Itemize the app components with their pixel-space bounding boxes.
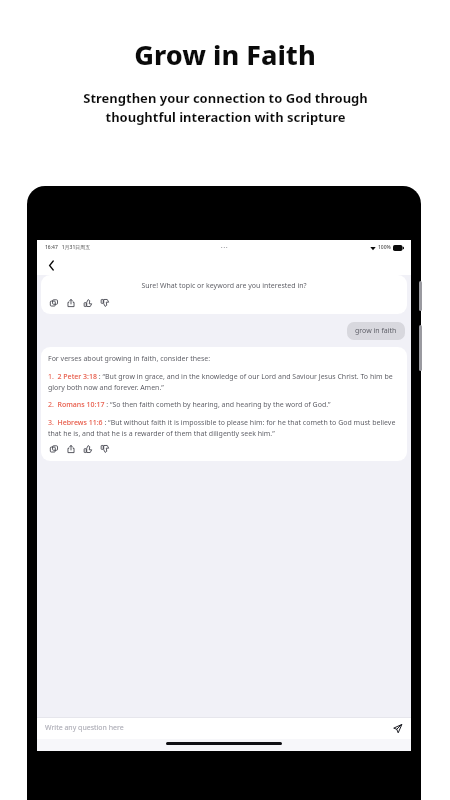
staticText: Sure! What topic or keyword are you inte… bbox=[48, 281, 400, 291]
staticText: • • • bbox=[221, 245, 228, 250]
staticText: 100% bbox=[378, 244, 391, 251]
button[interactable]: Send bbox=[391, 722, 403, 734]
button[interactable]: Write any question here bbox=[37, 717, 411, 739]
button[interactable]: Dislike bbox=[99, 443, 110, 454]
button[interactable]: Back bbox=[42, 256, 60, 274]
staticText: For verses about growing in faith, consi… bbox=[48, 354, 211, 364]
staticText: 16:47 1月31日周五 bbox=[45, 244, 91, 251]
button[interactable]: Copy bbox=[48, 297, 59, 308]
staticText: 1. 2 Peter 3:18 : “But grow in grace, an… bbox=[48, 372, 400, 392]
staticText: Grow in Faith bbox=[134, 36, 316, 73]
button[interactable]: For verses about growing in faith, consi… bbox=[41, 347, 407, 461]
staticText: 3. Hebrews 11:6 : “But without faith it … bbox=[48, 418, 400, 438]
button[interactable]: Like bbox=[82, 297, 93, 308]
staticText: Write any question here bbox=[45, 723, 391, 733]
button[interactable]: Like bbox=[82, 443, 93, 454]
button[interactable]: Copy bbox=[48, 443, 59, 454]
staticText: Strengthen your connection to God throug… bbox=[83, 89, 368, 126]
button[interactable]: Dislike bbox=[99, 297, 110, 308]
button[interactable]: grow in faith bbox=[347, 322, 405, 340]
staticText: grow in faith bbox=[355, 326, 397, 336]
button[interactable]: Share bbox=[65, 443, 76, 454]
staticText: 2. Romans 10:17 : “So then faith cometh … bbox=[48, 400, 400, 410]
button[interactable]: Share bbox=[65, 297, 76, 308]
button[interactable]: Sure! What topic or keyword are you inte… bbox=[41, 275, 407, 314]
